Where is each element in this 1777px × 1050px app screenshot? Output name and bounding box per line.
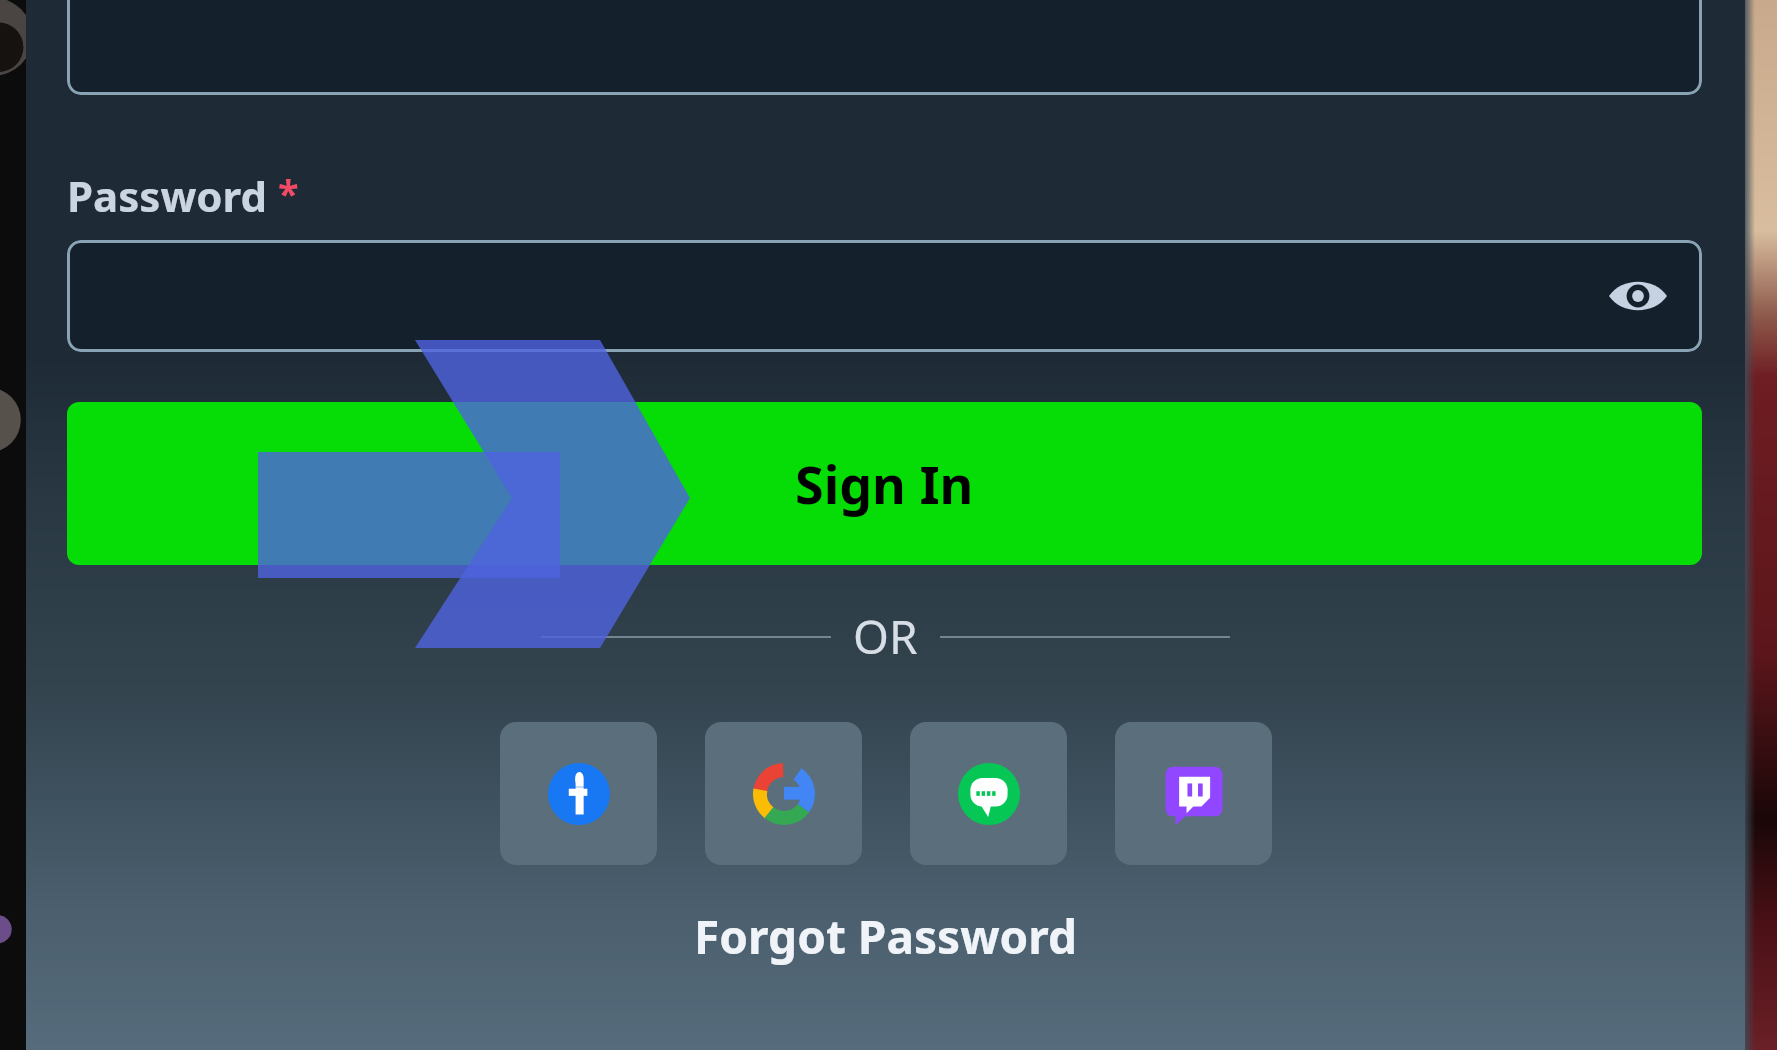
staticText: OR (853, 605, 918, 668)
button[interactable]: Sign In (67, 402, 1702, 565)
button[interactable]: Show password (1600, 258, 1676, 334)
button[interactable]: Sign in with LINE (910, 722, 1067, 865)
button[interactable] (67, 0, 1702, 95)
button[interactable]: Forgot Password (26, 905, 1745, 968)
button[interactable]: Sign in with Twitch (1115, 722, 1272, 865)
button[interactable]: Show password (67, 240, 1702, 352)
staticText: * (278, 167, 299, 219)
staticText: Password (67, 167, 268, 224)
button[interactable]: Sign in with Facebook (500, 722, 657, 865)
button[interactable]: Sign in with Google (705, 722, 862, 865)
staticText: Sign In (795, 448, 974, 519)
staticText: Forgot Password (694, 905, 1077, 968)
